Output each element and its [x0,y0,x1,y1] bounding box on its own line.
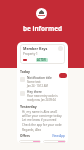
staticText: Offers [20,134,30,138]
staticText: Regards, Alex [22,128,42,132]
staticText: Hi, my name is Alex and I [22,110,58,114]
staticText: Some text [27,80,41,84]
staticText: Check the app for your code [22,123,62,127]
staticText: will be your concierge today. [22,114,63,118]
button[interactable]: Offer name [43,140,66,143]
staticText: ACTIVE [37,58,47,62]
staticText: Hey there [27,90,42,94]
staticText: Notification title [27,76,52,80]
button[interactable]: New [59,73,67,78]
staticText: Let me know if you need [22,118,57,122]
staticText: Jan 24 · 10:12 AM [27,84,48,88]
staticText: View App [52,134,65,138]
other: Logo [36,8,47,19]
button[interactable]: Hey there [17,90,68,102]
staticText: Today [20,69,30,74]
staticText: Property 1 [23,52,38,56]
staticText: ready now. Jan 24 09:04 [27,98,56,102]
button[interactable]: Notification title [17,76,68,88]
staticText: Your new entry code is [27,94,58,98]
button[interactable]: Offer name [19,140,41,143]
button[interactable]: View App [52,134,65,138]
staticText: be informed [23,24,62,33]
staticText: Member Keys [23,46,48,51]
staticText: Yesterday [20,104,37,109]
button[interactable]: Member Keys [20,44,65,64]
